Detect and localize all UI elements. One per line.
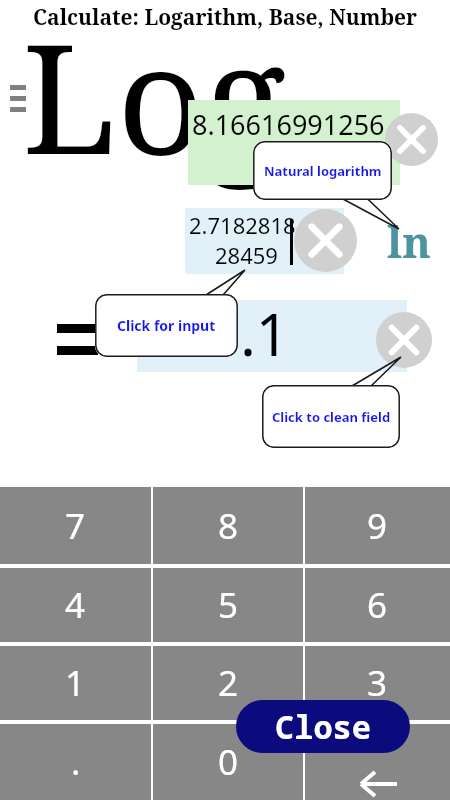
staticText: 8 xyxy=(218,502,239,550)
button[interactable]: 8 xyxy=(153,487,303,564)
staticText: Click to clean field xyxy=(272,408,391,426)
button[interactable]: 1 xyxy=(0,646,151,720)
staticText: 9 xyxy=(367,502,388,550)
button[interactable]: 8.16616991256 xyxy=(188,100,400,185)
button[interactable]: 9 xyxy=(305,487,450,564)
staticText: 2.7182818 xyxy=(189,210,296,240)
button[interactable]: 2 xyxy=(153,646,303,720)
button[interactable]: Clear base field xyxy=(294,209,357,272)
button[interactable]: Menu xyxy=(8,85,28,115)
button[interactable]: . xyxy=(0,724,151,800)
button[interactable]: 0 xyxy=(153,724,303,800)
button[interactable]: 2.7182818 xyxy=(185,208,344,274)
button[interactable]: Click to clean field xyxy=(262,385,400,448)
staticText: Close xyxy=(275,705,372,749)
staticText: 4 xyxy=(65,581,86,629)
button[interactable]: 6 xyxy=(305,568,450,642)
staticText: 2 xyxy=(218,659,239,707)
button[interactable]: 3 xyxy=(305,646,450,720)
button[interactable]: Clear result field xyxy=(385,113,438,166)
staticText: 28459 xyxy=(215,240,278,270)
staticText: 7 xyxy=(65,502,86,550)
staticText: ln xyxy=(387,212,431,271)
staticText: . xyxy=(71,738,81,786)
staticText: 3 xyxy=(367,659,388,707)
staticText: Click for input xyxy=(117,316,216,335)
button[interactable]: Natural logarithm xyxy=(253,141,392,200)
button[interactable]: Clear number field xyxy=(376,312,432,368)
staticText: 0 xyxy=(218,738,239,786)
button[interactable]: Backspace xyxy=(305,724,450,800)
button[interactable]: Click for input xyxy=(95,294,238,357)
staticText: 6 xyxy=(367,581,388,629)
button[interactable]: Close xyxy=(236,700,410,753)
button[interactable]: 7 xyxy=(0,487,151,564)
button[interactable]: 4 xyxy=(0,568,151,642)
button[interactable]: 0.1 xyxy=(137,300,407,372)
staticText: 1 xyxy=(65,659,86,707)
staticText: Natural logarithm xyxy=(264,162,382,180)
staticText: Calculate: Logarithm, Base, Number xyxy=(33,3,418,32)
staticText: 0.1 xyxy=(207,294,289,366)
button[interactable]: 5 xyxy=(153,568,303,642)
staticText: Log xyxy=(22,0,287,199)
staticText: 5 xyxy=(218,581,239,629)
staticText: 8.16616991256 xyxy=(192,106,385,143)
